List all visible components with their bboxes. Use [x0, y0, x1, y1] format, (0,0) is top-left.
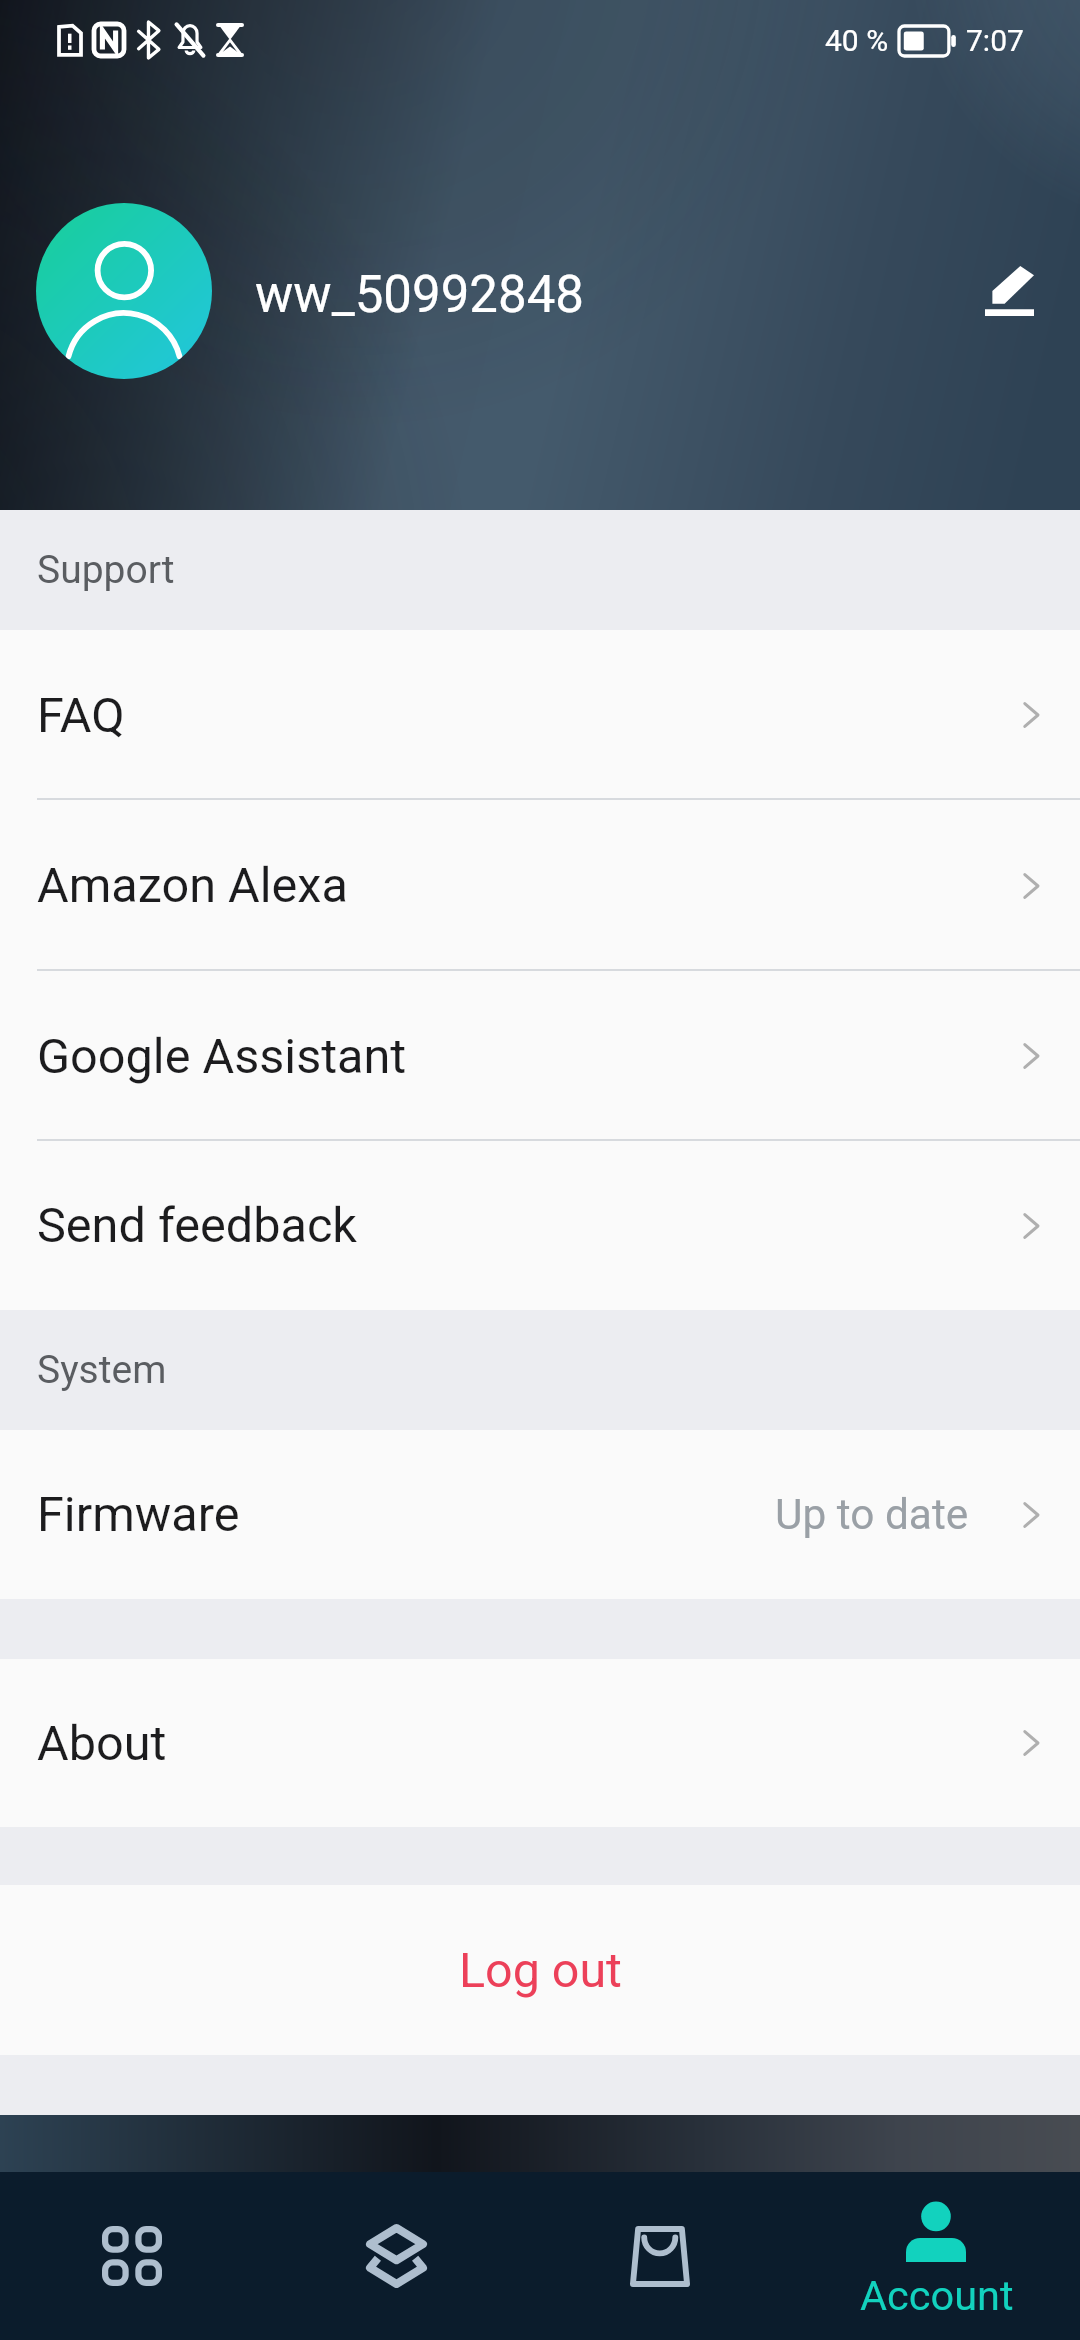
staticText: Google Assistant — [37, 1028, 407, 1085]
staticText: Support — [37, 547, 175, 593]
button[interactable]: Firmware — [0, 1430, 1080, 1599]
button[interactable]: About — [0, 1659, 1080, 1827]
button[interactable]: Edit profile — [954, 236, 1064, 346]
button[interactable]: Google Assistant — [0, 971, 1080, 1141]
button[interactable]: Shop — [528, 2172, 792, 2340]
button[interactable]: Scenes — [264, 2172, 528, 2340]
button[interactable]: FAQ — [0, 630, 1080, 800]
button[interactable]: Amazon Alexa — [0, 800, 1080, 971]
staticText: Amazon Alexa — [37, 857, 348, 914]
button[interactable]: Account — [804, 2172, 1080, 2340]
staticText: Log out — [459, 1942, 622, 1999]
staticText: ww_50992848 — [255, 265, 584, 325]
staticText: Firmware — [37, 1486, 240, 1543]
staticText: About — [37, 1715, 167, 1772]
staticText: 40 % — [825, 23, 889, 58]
staticText: Up to date — [775, 1490, 969, 1540]
staticText: 7:07 — [966, 23, 1024, 58]
button[interactable]: Devices — [0, 2172, 264, 2340]
staticText: Account — [860, 2271, 1014, 2320]
staticText: Send feedback — [37, 1197, 357, 1254]
button[interactable]: Log out — [0, 1885, 1080, 2055]
staticText: System — [37, 1347, 167, 1393]
button[interactable]: Send feedback — [0, 1141, 1080, 1310]
staticText: FAQ — [37, 687, 125, 744]
